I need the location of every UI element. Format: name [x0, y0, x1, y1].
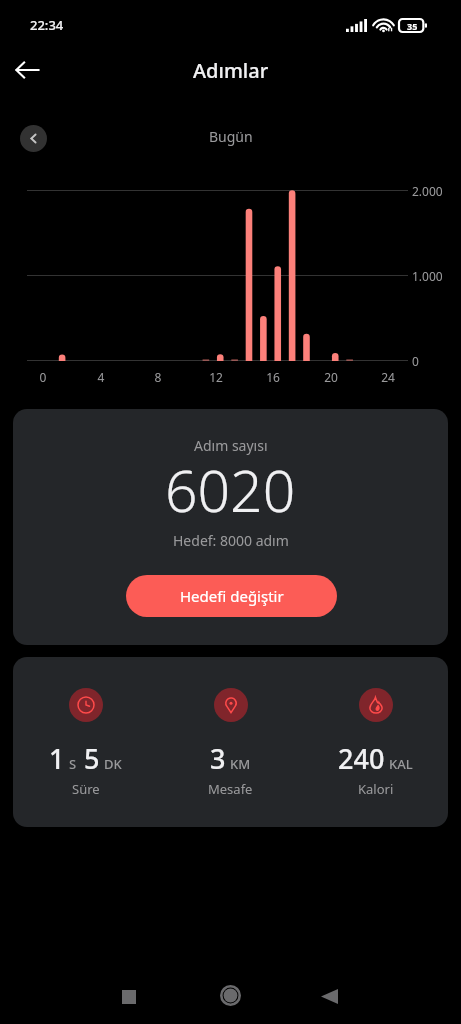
button[interactable]: 1	[13, 657, 158, 827]
staticText: Adımlar	[193, 57, 269, 84]
staticText: Hedefi değiştir	[180, 586, 284, 606]
staticText: 0	[23, 369, 63, 385]
staticText: 22:34	[30, 16, 64, 34]
staticText: Süre	[72, 780, 100, 798]
staticText: 24	[368, 369, 408, 385]
staticText: 0	[412, 353, 419, 369]
button[interactable]: 3	[158, 657, 303, 827]
staticText: Kalori	[358, 780, 394, 798]
button[interactable]: Ana ekran	[207, 972, 253, 1018]
staticText: Bugün	[209, 127, 253, 146]
button[interactable]: Geri	[306, 973, 352, 1019]
staticText: 6020	[165, 451, 296, 529]
staticText: 3	[210, 740, 226, 777]
button[interactable]: Geri	[3, 46, 51, 94]
staticText: 16	[253, 369, 293, 385]
staticText: 35	[407, 20, 418, 32]
staticText: DK	[104, 755, 122, 773]
staticText: KAL	[389, 755, 413, 773]
staticText: 1	[49, 740, 65, 777]
staticText: 8	[138, 369, 178, 385]
staticText: 240	[338, 740, 385, 777]
staticText: KM	[230, 755, 251, 773]
button[interactable]: Son uygulamalar	[106, 974, 152, 1020]
staticText: 12	[196, 369, 236, 385]
staticText: 4	[81, 369, 121, 385]
staticText: S	[69, 755, 77, 773]
staticText: 20	[311, 369, 351, 385]
staticText: Hedef: 8000 adım	[173, 531, 289, 550]
staticText: Adım sayısı	[194, 436, 268, 455]
staticText: Mesafe	[208, 780, 253, 798]
staticText: 5	[84, 740, 100, 777]
staticText: 1.000	[412, 268, 443, 284]
button[interactable]: Hedefi değiştir	[126, 575, 337, 617]
button[interactable]: 240	[303, 657, 448, 827]
button[interactable]: Önceki gün	[20, 125, 47, 152]
staticText: 2.000	[412, 183, 443, 199]
